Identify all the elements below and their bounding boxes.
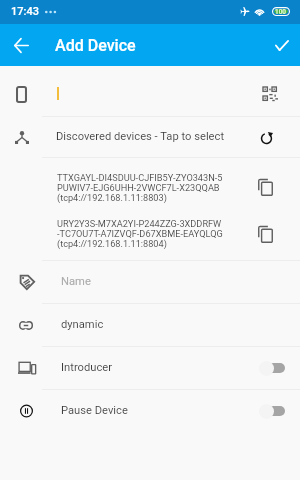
button[interactable]: URY2Y3S-M7XA2YI-P244ZZG-3XDDRFW -TC7OU7T… [0,204,300,260]
button[interactable]: Save [264,24,300,66]
staticText: dynamic [61,318,104,331]
button[interactable]: Back [3,24,40,66]
staticText: Add Device [55,36,136,55]
button[interactable] [248,390,300,432]
button[interactable]: Scan QR code [0,66,300,116]
button[interactable]: Introducer [0,347,300,389]
button[interactable]: Name [0,261,300,303]
staticText: Pause Device [61,404,128,417]
staticText: URY2Y3S-M7XA2YI-P244ZZG-3XDDRFW -TC7OU7T… [57,218,223,249]
button[interactable]: Refresh [250,117,300,157]
button[interactable]: Pause Device [0,390,300,432]
staticText: Discovered devices - Tap to select [56,130,225,143]
button[interactable]: Copy device ID [250,158,300,204]
staticText: Introducer [61,361,112,374]
button[interactable]: Copy device ID [250,204,300,260]
staticText: Name [61,275,91,288]
button[interactable]: Discovered devices - Tap to select [0,117,300,157]
button[interactable] [248,347,300,389]
staticText: TTXGAYL-DI4SDUU-CJFIB5Y-ZYO343N-5 PUWIV7… [57,172,223,203]
staticText: 17:43 [11,5,39,18]
button[interactable]: TTXGAYL-DI4SDUU-CJFIB5Y-ZYO343N-5 PUWIV7… [0,158,300,204]
staticText: 100 [275,8,286,16]
button[interactable]: dynamic [0,304,300,346]
button[interactable]: Scan QR code [252,66,300,116]
